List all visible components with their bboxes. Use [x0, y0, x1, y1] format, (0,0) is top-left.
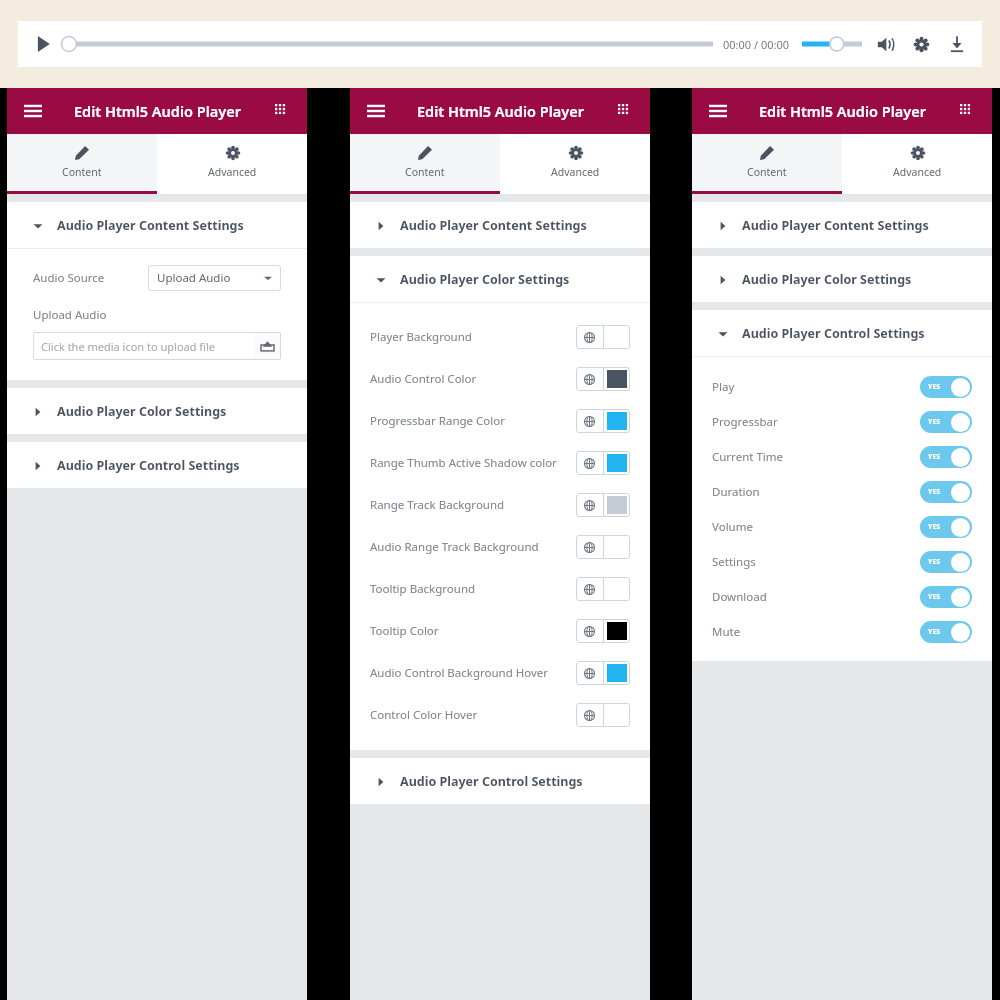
- staticText: 00:00 / 00:00: [723, 37, 790, 52]
- button[interactable]: Click the media icon to upload file: [33, 332, 281, 360]
- staticText: Edit Html5 Audio Player: [759, 101, 926, 121]
- button[interactable]: Advanced: [157, 134, 307, 191]
- button[interactable]: Control Color Hover: [370, 694, 630, 736]
- button[interactable]: Audio Player Control Settings: [692, 310, 992, 356]
- button[interactable]: Tooltip Color: [370, 610, 630, 652]
- staticText: Content: [747, 165, 787, 179]
- button[interactable]: Advanced: [500, 134, 650, 191]
- staticText: Range Track Background: [370, 497, 576, 513]
- button[interactable]: Audio Player Color Settings: [7, 388, 307, 434]
- button[interactable]: Range Thumb Active Shadow color: [370, 442, 630, 484]
- button[interactable]: Audio Control Background Hover: [370, 652, 630, 694]
- button[interactable]: Audio Player Content Settings: [7, 202, 307, 248]
- staticText: Upload Audio: [33, 307, 107, 323]
- button[interactable]: Settings: [712, 544, 972, 579]
- staticText: Volume: [712, 519, 920, 535]
- staticText: YES: [928, 592, 941, 602]
- button[interactable]: Menu: [704, 97, 732, 125]
- staticText: Player Background: [370, 329, 576, 345]
- button[interactable]: Menu: [19, 97, 47, 125]
- staticText: Content: [405, 165, 445, 179]
- button[interactable]: Seek: [62, 33, 713, 55]
- staticText: YES: [928, 452, 941, 462]
- staticText: Tooltip Background: [370, 581, 576, 597]
- button[interactable]: Audio Player Content Settings: [692, 202, 992, 248]
- button[interactable]: Content: [692, 134, 842, 191]
- staticText: Audio Control Background Hover: [370, 665, 576, 681]
- staticText: Settings: [712, 554, 920, 570]
- staticText: Audio Player Color Settings: [57, 403, 227, 420]
- button[interactable]: Content: [350, 134, 500, 191]
- staticText: YES: [928, 417, 941, 427]
- staticText: Content: [62, 165, 102, 179]
- staticText: Audio Range Track Background: [370, 539, 576, 555]
- staticText: Control Color Hover: [370, 707, 576, 723]
- button[interactable]: Mute: [874, 33, 896, 55]
- staticText: Audio Player Control Settings: [57, 457, 240, 474]
- staticText: Mute: [712, 624, 920, 640]
- staticText: YES: [928, 627, 941, 637]
- staticText: YES: [928, 522, 941, 532]
- staticText: Audio Player Color Settings: [400, 271, 570, 288]
- button[interactable]: Menu: [362, 97, 390, 125]
- staticText: Audio Source: [33, 270, 105, 286]
- button[interactable]: Tooltip Background: [370, 568, 630, 610]
- button[interactable]: Audio Control Color: [370, 358, 630, 400]
- button[interactable]: Audio Player Content Settings: [350, 202, 650, 248]
- button[interactable]: Player Background: [370, 316, 630, 358]
- button[interactable]: Audio Player Color Settings: [692, 256, 992, 302]
- button[interactable]: Progressbar Range Color: [370, 400, 630, 442]
- button[interactable]: Upload Audio: [148, 265, 281, 291]
- button[interactable]: Audio Player Control Settings: [350, 758, 650, 804]
- button[interactable]: Play: [32, 33, 54, 55]
- staticText: Audio Player Content Settings: [57, 217, 244, 234]
- button[interactable]: Volume: [712, 509, 972, 544]
- button[interactable]: Apps: [954, 98, 980, 124]
- staticText: Tooltip Color: [370, 623, 576, 639]
- button[interactable]: Audio Player Color Settings: [350, 256, 650, 302]
- staticText: Audio Player Control Settings: [742, 325, 925, 342]
- staticText: Edit Html5 Audio Player: [417, 101, 584, 121]
- staticText: YES: [928, 557, 941, 567]
- button[interactable]: Apps: [269, 98, 295, 124]
- staticText: Audio Player Color Settings: [742, 271, 912, 288]
- button[interactable]: Audio Range Track Background: [370, 526, 630, 568]
- staticText: Audio Player Content Settings: [742, 217, 929, 234]
- button[interactable]: Settings: [910, 33, 932, 55]
- staticText: Progressbar: [712, 414, 920, 430]
- button[interactable]: Audio Player Control Settings: [7, 442, 307, 488]
- staticText: Play: [712, 379, 920, 395]
- staticText: Click the media icon to upload file: [41, 339, 216, 354]
- button[interactable]: Progressbar: [712, 404, 972, 439]
- button[interactable]: Range Track Background: [370, 484, 630, 526]
- staticText: YES: [928, 487, 941, 497]
- button[interactable]: Current Time: [712, 439, 972, 474]
- staticText: Audio Player Content Settings: [400, 217, 587, 234]
- button[interactable]: Apps: [612, 98, 638, 124]
- staticText: YES: [928, 382, 941, 392]
- button[interactable]: Download: [712, 579, 972, 614]
- staticText: Audio Player Control Settings: [400, 773, 583, 790]
- staticText: Edit Html5 Audio Player: [74, 101, 241, 121]
- staticText: Progressbar Range Color: [370, 413, 576, 429]
- button[interactable]: Play: [712, 369, 972, 404]
- staticText: Audio Control Color: [370, 371, 576, 387]
- button[interactable]: Advanced: [842, 134, 992, 191]
- button[interactable]: Mute: [712, 614, 972, 649]
- staticText: Advanced: [893, 165, 942, 179]
- staticText: Download: [712, 589, 920, 605]
- staticText: Duration: [712, 484, 920, 500]
- button[interactable]: Download: [946, 33, 968, 55]
- staticText: Upload Audio: [157, 270, 231, 286]
- button[interactable]: Duration: [712, 474, 972, 509]
- button[interactable]: Content: [7, 134, 157, 191]
- staticText: Advanced: [551, 165, 600, 179]
- staticText: Advanced: [208, 165, 257, 179]
- staticText: Range Thumb Active Shadow color: [370, 455, 576, 471]
- button[interactable]: Volume level: [802, 33, 862, 55]
- staticText: Current Time: [712, 449, 920, 465]
